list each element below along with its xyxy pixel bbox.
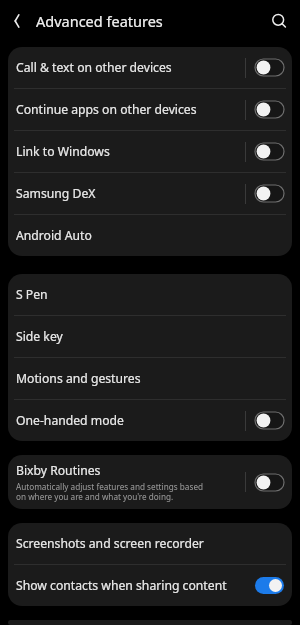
button[interactable]: Motions and gestures [8, 358, 292, 399]
button[interactable]: Toggle off [255, 412, 284, 429]
staticText: Side key [16, 328, 63, 345]
button[interactable]: Toggle off [255, 185, 284, 202]
button[interactable]: Back [0, 4, 34, 38]
staticText: Link to Windows [16, 143, 110, 160]
button[interactable]: Toggle off [255, 143, 284, 160]
staticText: Samsung DeX [16, 185, 96, 202]
button[interactable]: Screenshots and screen recorder [8, 523, 292, 564]
button[interactable]: Call & text on other devices [8, 47, 292, 88]
button[interactable]: Search [262, 4, 296, 38]
button[interactable]: Toggle off [255, 474, 284, 491]
staticText: Continue apps on other devices [16, 101, 197, 118]
button[interactable]: Side key [8, 316, 292, 357]
staticText: Android Auto [16, 227, 92, 244]
button[interactable]: S Pen [8, 274, 292, 315]
staticText: Bixby Routines [16, 462, 101, 479]
button[interactable]: Continue apps on other devices [8, 89, 292, 130]
staticText: Show contacts when sharing content [16, 577, 227, 594]
staticText: Advanced features [36, 11, 163, 31]
staticText: One-handed mode [16, 412, 124, 429]
staticText: S Pen [16, 286, 48, 303]
button[interactable]: Link to Windows [8, 131, 292, 172]
button[interactable]: Toggle on [255, 577, 284, 594]
button[interactable]: Toggle off [255, 59, 284, 76]
staticText: Automatically adjust features and settin… [16, 481, 204, 502]
button[interactable]: One-handed mode [8, 400, 292, 441]
button[interactable]: Bixby Routines [8, 455, 292, 509]
button[interactable]: Samsung DeX [8, 173, 292, 214]
button[interactable]: Toggle off [255, 101, 284, 118]
staticText: Motions and gestures [16, 370, 141, 387]
button[interactable]: Show contacts when sharing content [8, 565, 292, 606]
staticText: Screenshots and screen recorder [16, 535, 204, 552]
staticText: Call & text on other devices [16, 59, 172, 76]
button[interactable]: Android Auto [8, 215, 292, 256]
